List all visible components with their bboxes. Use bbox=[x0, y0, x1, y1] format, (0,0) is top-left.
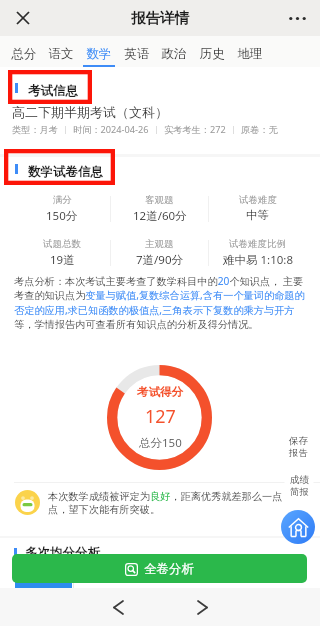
staticText: 150分 bbox=[46, 208, 78, 224]
button[interactable]: 保存 bbox=[283, 431, 314, 462]
staticText: 难中易 1:10:8 bbox=[223, 252, 293, 268]
button[interactable]: 历史 bbox=[194, 36, 230, 67]
staticText: 高二下期半期考试（文科） bbox=[12, 104, 168, 120]
button[interactable]: 地理 bbox=[232, 36, 268, 67]
staticText: 总分150 bbox=[139, 435, 182, 451]
staticText: 多次均分分析 bbox=[25, 545, 100, 561]
staticText: 保存 bbox=[289, 435, 308, 447]
staticText: 127 bbox=[145, 404, 176, 429]
staticText: 中等 bbox=[246, 208, 269, 222]
button[interactable]: More options bbox=[285, 6, 309, 30]
staticText: 全卷分析 bbox=[144, 561, 194, 577]
staticText: 总分 bbox=[6, 46, 42, 62]
button[interactable]: Close bbox=[11, 6, 35, 30]
staticText: 地理 bbox=[232, 46, 268, 62]
staticText: 报告 bbox=[289, 447, 308, 459]
staticText: 试卷难度比例 bbox=[229, 238, 286, 250]
staticText: 数学 bbox=[81, 46, 117, 62]
button[interactable]: Forward bbox=[182, 588, 222, 626]
staticText: 试卷难度 bbox=[239, 194, 277, 206]
button[interactable]: 语文 bbox=[43, 36, 79, 67]
staticText: 7道/90分 bbox=[136, 252, 184, 268]
staticText: 政治 bbox=[156, 46, 192, 62]
staticText: 简报 bbox=[290, 486, 309, 498]
staticText: 考点分析：本次考试主要考查了数学科目中的20个知识点， 主要考查的知识点为变量与… bbox=[14, 274, 310, 331]
staticText: 类型：月考 bbox=[12, 124, 58, 136]
staticText: 语文 bbox=[43, 46, 79, 62]
staticText: 历史 bbox=[194, 46, 230, 62]
button[interactable]: 英语 bbox=[119, 36, 155, 67]
button[interactable]: 全卷分析 bbox=[12, 554, 307, 583]
staticText: 数学试卷信息 bbox=[28, 164, 103, 180]
staticText: 本次数学成绩被评定为良好，距离优秀就差那么一点点，望下次能有所突破。 bbox=[48, 490, 298, 516]
button[interactable]: Back bbox=[98, 588, 138, 626]
button[interactable]: 政治 bbox=[156, 36, 192, 67]
staticText: 客观题 bbox=[145, 194, 174, 206]
staticText: 时间：2024-04-26 bbox=[73, 123, 149, 136]
staticText: 成绩 bbox=[290, 474, 309, 486]
staticText: 主观题 bbox=[145, 238, 174, 250]
staticText: 报告详情 bbox=[131, 9, 189, 27]
staticText: 满分 bbox=[53, 194, 72, 206]
staticText: 考试信息 bbox=[28, 83, 78, 99]
staticText: 英语 bbox=[119, 46, 155, 62]
staticText: 19道 bbox=[50, 252, 75, 268]
staticText: 原卷：无 bbox=[241, 124, 278, 136]
button[interactable]: 成绩 bbox=[284, 471, 314, 501]
button[interactable]: 数学 bbox=[81, 36, 117, 67]
staticText: 试题总数 bbox=[43, 238, 81, 250]
staticText: 实考考生：272 bbox=[164, 123, 226, 136]
button[interactable]: Home bbox=[281, 510, 315, 544]
button[interactable]: 总分 bbox=[6, 36, 42, 67]
staticText: 考试得分 bbox=[137, 385, 183, 399]
staticText: 12道/60分 bbox=[133, 208, 187, 224]
